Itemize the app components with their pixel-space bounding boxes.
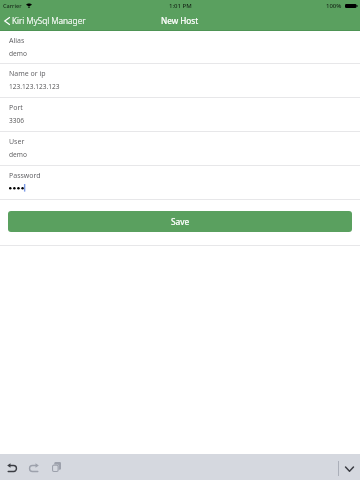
staticText: Save xyxy=(171,216,190,227)
button[interactable]: Name or ip xyxy=(0,64,360,98)
button[interactable]: Redo xyxy=(23,454,45,480)
staticText: Port xyxy=(9,103,23,113)
staticText: Kiri MySql Manager xyxy=(12,15,86,26)
staticText: demo xyxy=(9,150,27,159)
staticText: Alias xyxy=(9,36,25,46)
staticText: 3306 xyxy=(9,116,25,125)
button[interactable]: Alias xyxy=(0,31,360,64)
button[interactable]: Port xyxy=(0,98,360,132)
staticText: New Host xyxy=(161,15,199,26)
staticText: demo xyxy=(9,49,27,58)
button[interactable]: Save xyxy=(8,211,352,232)
staticText: 123.123.123.123 xyxy=(9,82,60,91)
staticText: Name or ip xyxy=(9,69,46,79)
staticText: 1:01 PM xyxy=(169,2,192,10)
staticText: User xyxy=(9,137,25,147)
button[interactable]: Undo xyxy=(1,454,23,480)
button[interactable]: Password xyxy=(0,166,360,200)
staticText: 100% xyxy=(326,2,342,10)
button[interactable]: Paste xyxy=(45,454,67,480)
staticText: Password xyxy=(9,171,41,181)
button[interactable]: Kiri MySql Manager xyxy=(0,14,92,30)
button[interactable]: Hide keyboard xyxy=(339,454,360,480)
staticText: Carrier xyxy=(3,2,22,10)
button[interactable]: User xyxy=(0,132,360,166)
